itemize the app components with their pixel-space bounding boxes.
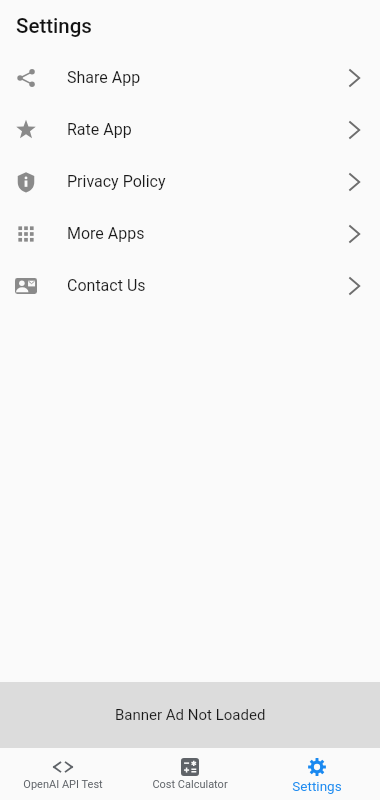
staticText: More Apps [67,224,145,243]
button[interactable]: Cost Calculator [126,748,253,800]
button[interactable]: OpenAI API Test [0,748,126,800]
staticText: OpenAI API Test [23,778,103,791]
staticText: Cost Calculator [152,778,228,791]
button[interactable]: Contact Us [0,260,380,312]
staticText: Share App [67,68,141,87]
button[interactable]: Rate App [0,104,380,156]
staticText: Settings [292,778,342,794]
staticText: Contact Us [67,276,146,295]
button[interactable]: Privacy Policy [0,156,380,208]
button[interactable]: More Apps [0,208,380,260]
staticText: Banner Ad Not Loaded [115,706,266,724]
staticText: Privacy Policy [67,172,166,191]
button[interactable]: Share App [0,52,380,104]
staticText: Rate App [67,120,132,139]
button[interactable]: Settings [253,748,380,800]
staticText: Settings [16,14,92,38]
